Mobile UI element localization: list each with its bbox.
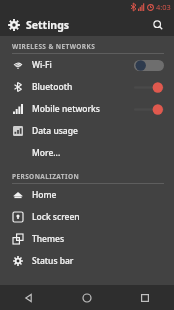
button[interactable]: Recents: [116, 285, 174, 310]
button[interactable]: Data usage: [0, 120, 174, 142]
staticText: WIRELESS & NETWORKS: [12, 42, 96, 51]
button[interactable]: Mobile networks: [0, 98, 174, 120]
button[interactable]: Search: [148, 15, 168, 35]
staticText: Bluetooth: [32, 81, 73, 93]
button[interactable]: Status bar: [0, 250, 174, 272]
button[interactable]: Home: [0, 184, 174, 206]
button[interactable]: Themes: [0, 228, 174, 250]
staticText: Home: [32, 189, 57, 201]
staticText: Data usage: [32, 125, 78, 137]
button[interactable]: Home: [58, 285, 116, 310]
button[interactable]: Toggle on: [134, 81, 164, 94]
staticText: Settings: [26, 18, 70, 32]
button[interactable]: Toggle off: [134, 59, 164, 72]
staticText: Wi-Fi: [32, 59, 52, 71]
staticText: 4:03: [156, 2, 171, 12]
staticText: PERSONALIZATION: [12, 172, 80, 181]
button[interactable]: Wi-Fi: [0, 54, 174, 76]
button[interactable]: More...: [0, 142, 174, 164]
button[interactable]: Back: [0, 285, 58, 310]
staticText: Mobile networks: [32, 103, 100, 115]
staticText: Status bar: [32, 255, 74, 267]
staticText: Themes: [32, 233, 65, 245]
button[interactable]: Toggle on: [134, 103, 164, 116]
button[interactable]: Lock screen: [0, 206, 174, 228]
button[interactable]: Bluetooth: [0, 76, 174, 98]
staticText: Lock screen: [32, 211, 80, 223]
staticText: More...: [32, 147, 61, 159]
